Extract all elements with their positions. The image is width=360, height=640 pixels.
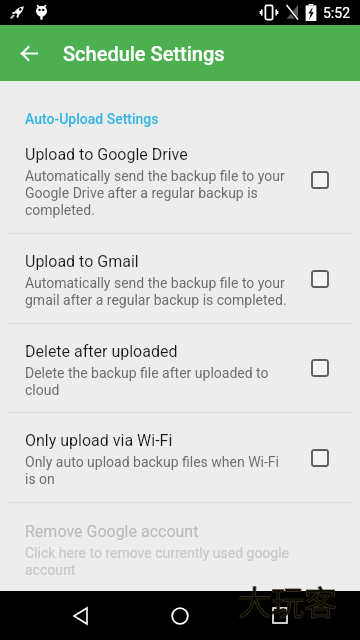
- staticText: 大玩客: [238, 577, 337, 625]
- button[interactable]: Only upload via Wi-Fi: [0, 413, 360, 502]
- button[interactable]: Delete after uploaded: [0, 324, 360, 412]
- button[interactable]: Home: [155, 591, 204, 640]
- button[interactable]: Upload to Google Drive: [0, 127, 360, 233]
- staticText: Delete after uploaded: [25, 342, 178, 361]
- staticText: Upload to Google Drive: [25, 145, 188, 164]
- staticText: 5:52: [323, 5, 350, 21]
- staticText: Automatically send the backup file to yo…: [25, 275, 290, 309]
- staticText: Auto-Upload Settings: [25, 111, 159, 127]
- button[interactable]: Back: [56, 591, 105, 640]
- staticText: 大玩客: [238, 577, 337, 625]
- button[interactable]: Remove Google account: [0, 503, 360, 592]
- button[interactable]: Upload to Gmail: [0, 234, 360, 323]
- staticText: Only auto upload backup files when Wi-Fi…: [25, 454, 290, 488]
- staticText: Delete the backup file after uploaded to…: [25, 365, 290, 399]
- button[interactable]: Recent apps: [255, 591, 304, 640]
- staticText: Click here to remove currently used goog…: [25, 545, 290, 579]
- staticText: Automatically send the backup file to yo…: [25, 168, 290, 219]
- staticText: Only upload via Wi-Fi: [25, 431, 173, 450]
- button[interactable]: Back: [12, 37, 45, 70]
- staticText: Remove Google account: [25, 522, 199, 541]
- staticText: Upload to Gmail: [25, 252, 139, 271]
- staticText: Schedule Settings: [63, 42, 225, 65]
